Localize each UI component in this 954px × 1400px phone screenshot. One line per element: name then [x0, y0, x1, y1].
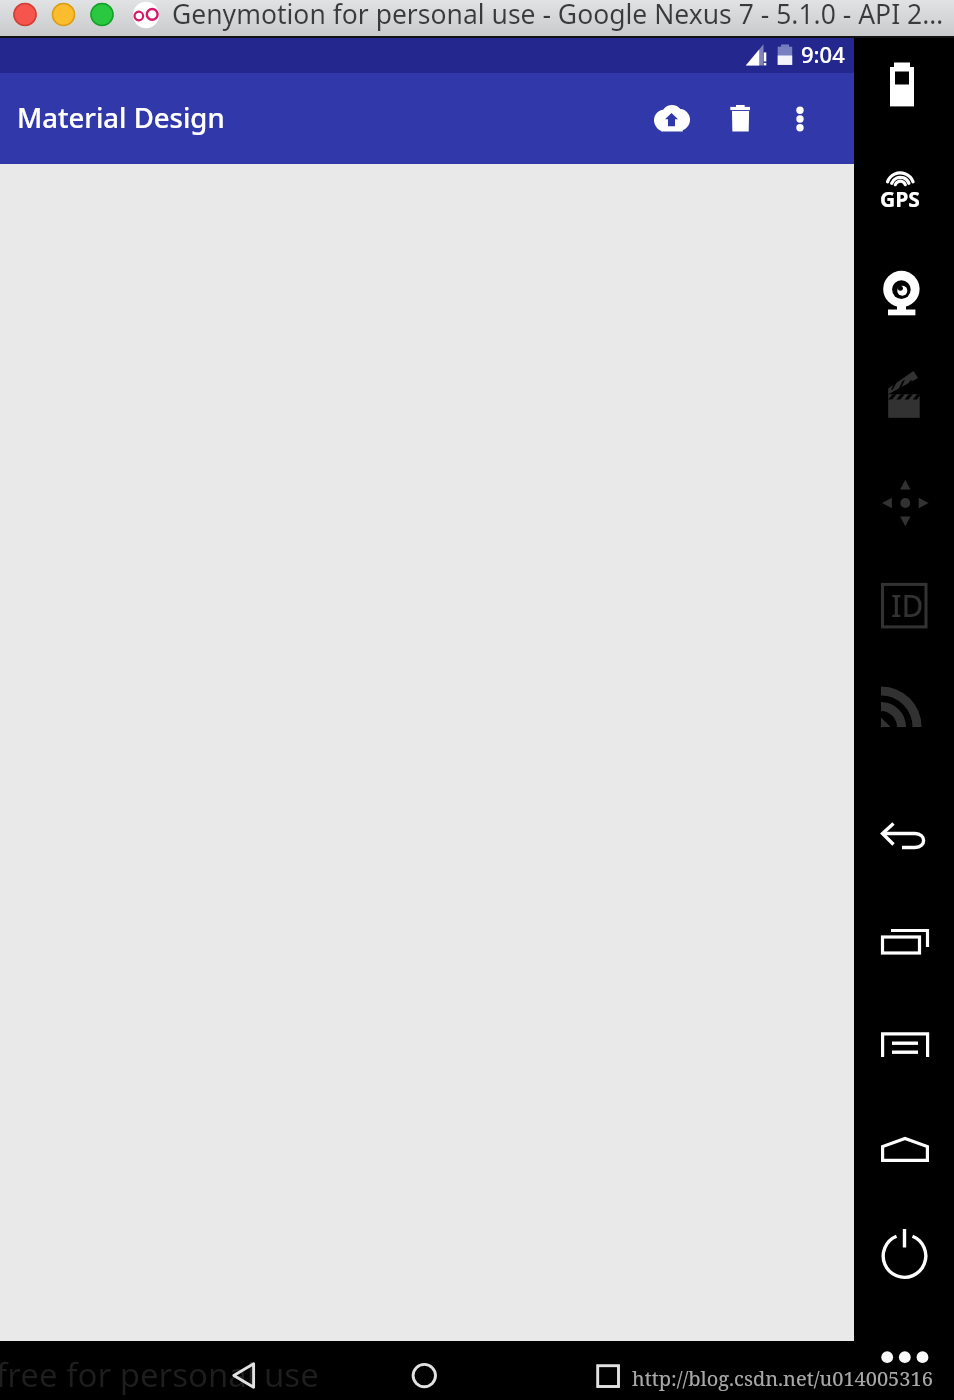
button[interactable]: Menu key: [878, 1030, 932, 1060]
button[interactable]: Back: [216, 1347, 272, 1400]
staticText: free for personal use: [0, 1352, 319, 1397]
staticText: Material Design: [17, 99, 225, 136]
button[interactable]: GPS: [878, 162, 930, 210]
button[interactable]: Recent apps: [580, 1347, 636, 1400]
button[interactable]: Upload: [646, 91, 698, 143]
staticText: 9:04: [801, 39, 845, 69]
staticText: GPS: [880, 185, 920, 214]
button[interactable]: Network: [878, 684, 924, 730]
button[interactable]: Home key: [878, 1134, 932, 1164]
button[interactable]: Recent apps key: [878, 926, 932, 960]
button[interactable]: Power: [882, 1230, 928, 1282]
button[interactable]: Camera: [880, 266, 928, 320]
button[interactable]: Screen recording: [882, 368, 926, 422]
staticText: Genymotion for personal use - Google Nex…: [172, 0, 944, 32]
button[interactable]: Identifiers: [878, 580, 930, 632]
staticText: ID: [891, 585, 924, 626]
button[interactable]: More options: [776, 94, 824, 140]
button[interactable]: Battery: [880, 56, 928, 112]
button[interactable]: Home: [397, 1347, 453, 1400]
button[interactable]: More: [880, 1346, 930, 1370]
staticText: http://blog.csdn.net/u014005316: [632, 1365, 933, 1392]
button[interactable]: Rotate: [878, 476, 930, 530]
button[interactable]: Delete: [714, 91, 766, 143]
button[interactable]: Back key: [878, 820, 932, 854]
